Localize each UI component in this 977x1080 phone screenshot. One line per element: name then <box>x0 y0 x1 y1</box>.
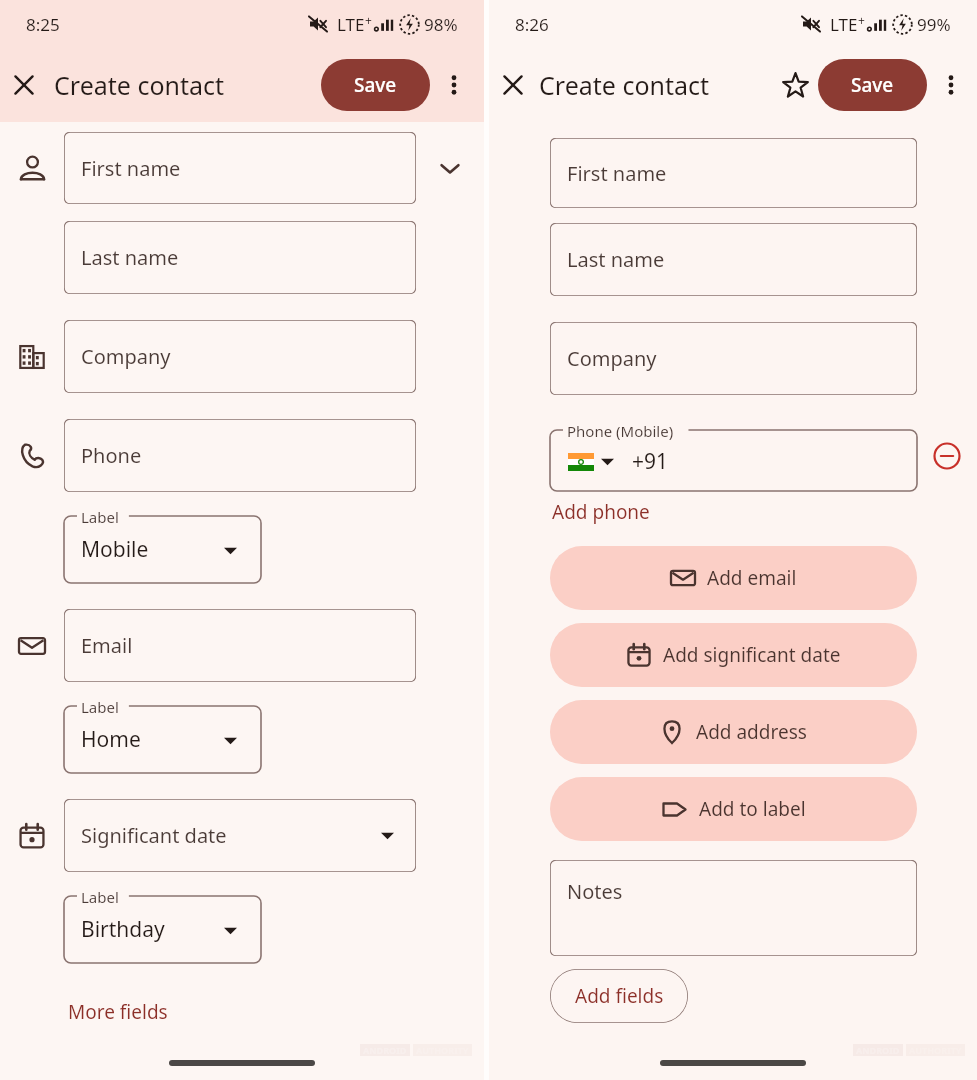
staticText: Company <box>81 343 171 370</box>
staticText: LTE <box>830 13 858 36</box>
button[interactable]: Add to favorites <box>772 62 818 108</box>
staticText: Save <box>354 72 397 98</box>
button[interactable]: Company <box>64 320 416 393</box>
staticText: First name <box>81 155 181 182</box>
button[interactable]: Close <box>0 61 48 109</box>
button[interactable]: Expand name fields <box>416 132 484 204</box>
button[interactable]: Add to label <box>550 777 917 841</box>
staticText: Add phone <box>552 499 650 525</box>
staticText: Home <box>81 725 141 754</box>
staticText: Significant date <box>81 822 227 849</box>
button[interactable]: Label <box>64 697 261 773</box>
staticText: Label <box>81 507 119 527</box>
staticText: + <box>858 12 865 28</box>
button[interactable]: Close <box>489 61 537 109</box>
staticText: Company <box>567 345 657 372</box>
button[interactable]: Add significant date <box>550 623 917 687</box>
staticText: 98% <box>424 13 458 36</box>
button[interactable]: Notes <box>550 860 917 956</box>
button[interactable]: Company <box>550 322 917 395</box>
button[interactable]: More fields <box>52 991 184 1033</box>
button[interactable]: Label <box>64 887 261 963</box>
button[interactable]: Add fields <box>550 969 688 1023</box>
staticText: Add to label <box>699 796 806 822</box>
staticText: Add email <box>707 565 797 591</box>
staticText: 8:26 <box>515 13 549 36</box>
staticText: + <box>365 12 372 28</box>
staticText: More fields <box>68 999 168 1025</box>
staticText: Phone (Mobile) <box>567 421 674 441</box>
staticText: Birthday <box>81 915 165 944</box>
button[interactable]: Last name <box>64 221 416 294</box>
button[interactable]: First name <box>64 132 416 204</box>
staticText: Notes <box>567 878 623 905</box>
button[interactable]: Add address <box>550 700 917 764</box>
button[interactable]: More options <box>927 61 975 109</box>
staticText: +91 <box>632 447 669 476</box>
button[interactable]: More options <box>430 61 478 109</box>
staticText: Create contact <box>539 68 710 102</box>
staticText: Create contact <box>54 68 225 102</box>
button[interactable]: Remove phone <box>925 434 969 478</box>
staticText: Label <box>81 697 119 717</box>
staticText: Phone <box>81 442 142 469</box>
staticText: Save <box>851 72 894 98</box>
button[interactable]: Add email <box>550 546 917 610</box>
staticText: First name <box>567 160 667 187</box>
staticText: Last name <box>81 244 179 271</box>
button[interactable]: Phone <box>64 419 416 492</box>
button[interactable]: Label <box>64 507 261 583</box>
staticText: 99% <box>917 13 951 36</box>
button[interactable]: Add phone <box>550 491 652 533</box>
button[interactable]: First name <box>550 138 917 208</box>
button[interactable]: Significant date <box>64 799 416 872</box>
staticText: Add address <box>696 719 807 745</box>
staticText: Label <box>81 887 119 907</box>
staticText: Add fields <box>575 983 664 1009</box>
button[interactable]: Save <box>321 59 430 111</box>
staticText: Email <box>81 632 133 659</box>
staticText: 8:25 <box>26 13 60 36</box>
button[interactable]: Last name <box>550 223 917 296</box>
staticText: Last name <box>567 246 665 273</box>
button[interactable]: Email <box>64 609 416 682</box>
staticText: Mobile <box>81 535 149 564</box>
button[interactable]: Phone (Mobile) <box>550 421 917 491</box>
staticText: LTE <box>337 13 365 36</box>
button[interactable]: Save <box>818 59 927 111</box>
staticText: Add significant date <box>663 642 841 668</box>
